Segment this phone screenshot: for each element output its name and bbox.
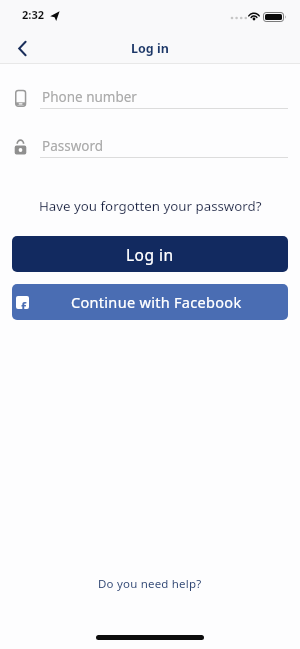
staticText: Log in: [131, 40, 169, 57]
staticText: f: [21, 298, 27, 309]
button[interactable]: Log in: [12, 236, 288, 272]
button[interactable]: [12, 84, 292, 111]
button[interactable]: Do you need help?: [0, 576, 300, 592]
staticText: Have you forgotten your password?: [39, 197, 262, 215]
button[interactable]: f: [12, 284, 288, 320]
button[interactable]: Have you forgotten your password?: [0, 197, 300, 215]
staticText: 2:32: [22, 7, 44, 22]
staticText: Log in: [126, 244, 174, 265]
staticText: Password: [42, 137, 104, 155]
staticText: Continue with Facebook: [71, 292, 242, 312]
staticText: Do you need help?: [98, 576, 202, 592]
button[interactable]: [12, 133, 292, 160]
button[interactable]: [10, 37, 34, 59]
staticText: Phone number: [42, 88, 137, 106]
